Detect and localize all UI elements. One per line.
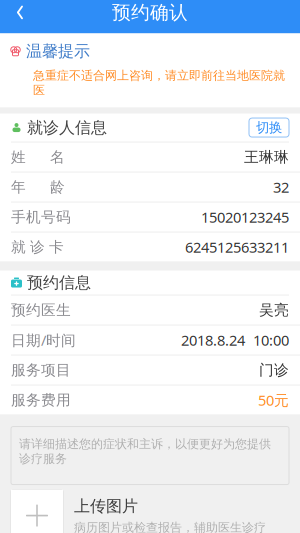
button[interactable]: 上传图片 xyxy=(0,485,300,533)
staticText: 预约信息 xyxy=(27,273,91,292)
staticText: 姓 名 xyxy=(11,148,65,166)
staticText: 服务项目 xyxy=(11,361,71,379)
staticText: 就诊人信息 xyxy=(27,118,107,137)
button[interactable]: 切换 xyxy=(249,118,289,137)
staticText: 50元 xyxy=(258,390,289,410)
staticText: 服务费用 xyxy=(11,391,71,409)
staticText: 门诊 xyxy=(259,361,289,379)
staticText: 6245125633211 xyxy=(185,237,289,257)
staticText: 32 xyxy=(273,177,289,197)
staticText: 预约确认 xyxy=(112,1,188,24)
staticText: 切换 xyxy=(256,119,282,136)
staticText: 病历图片或检查报告，辅助医生诊疗 xyxy=(74,520,266,533)
staticText: 吴亮 xyxy=(259,301,289,319)
staticText: 手机号码 xyxy=(11,208,71,226)
staticText: 预约医生 xyxy=(11,301,71,319)
staticText: 上传图片 xyxy=(74,496,138,516)
staticText: 就 诊 卡 xyxy=(11,238,64,256)
staticText: 15020123245 xyxy=(201,207,289,227)
staticText: 温馨提示 xyxy=(26,41,90,61)
staticText: 王琳琳 xyxy=(244,148,289,166)
button[interactable]: Back xyxy=(0,0,40,33)
staticText: 2018.8.24 10:00 xyxy=(181,330,289,350)
staticText: 请详细描述您的症状和主诉，以便更好为您提供诊疗服务 xyxy=(19,437,271,466)
staticText: 年 龄 xyxy=(11,178,65,196)
staticText: 日期/时间 xyxy=(11,330,76,350)
staticText: 急重症不适合网上咨询，请立即前往当地医院就医 xyxy=(33,68,285,98)
